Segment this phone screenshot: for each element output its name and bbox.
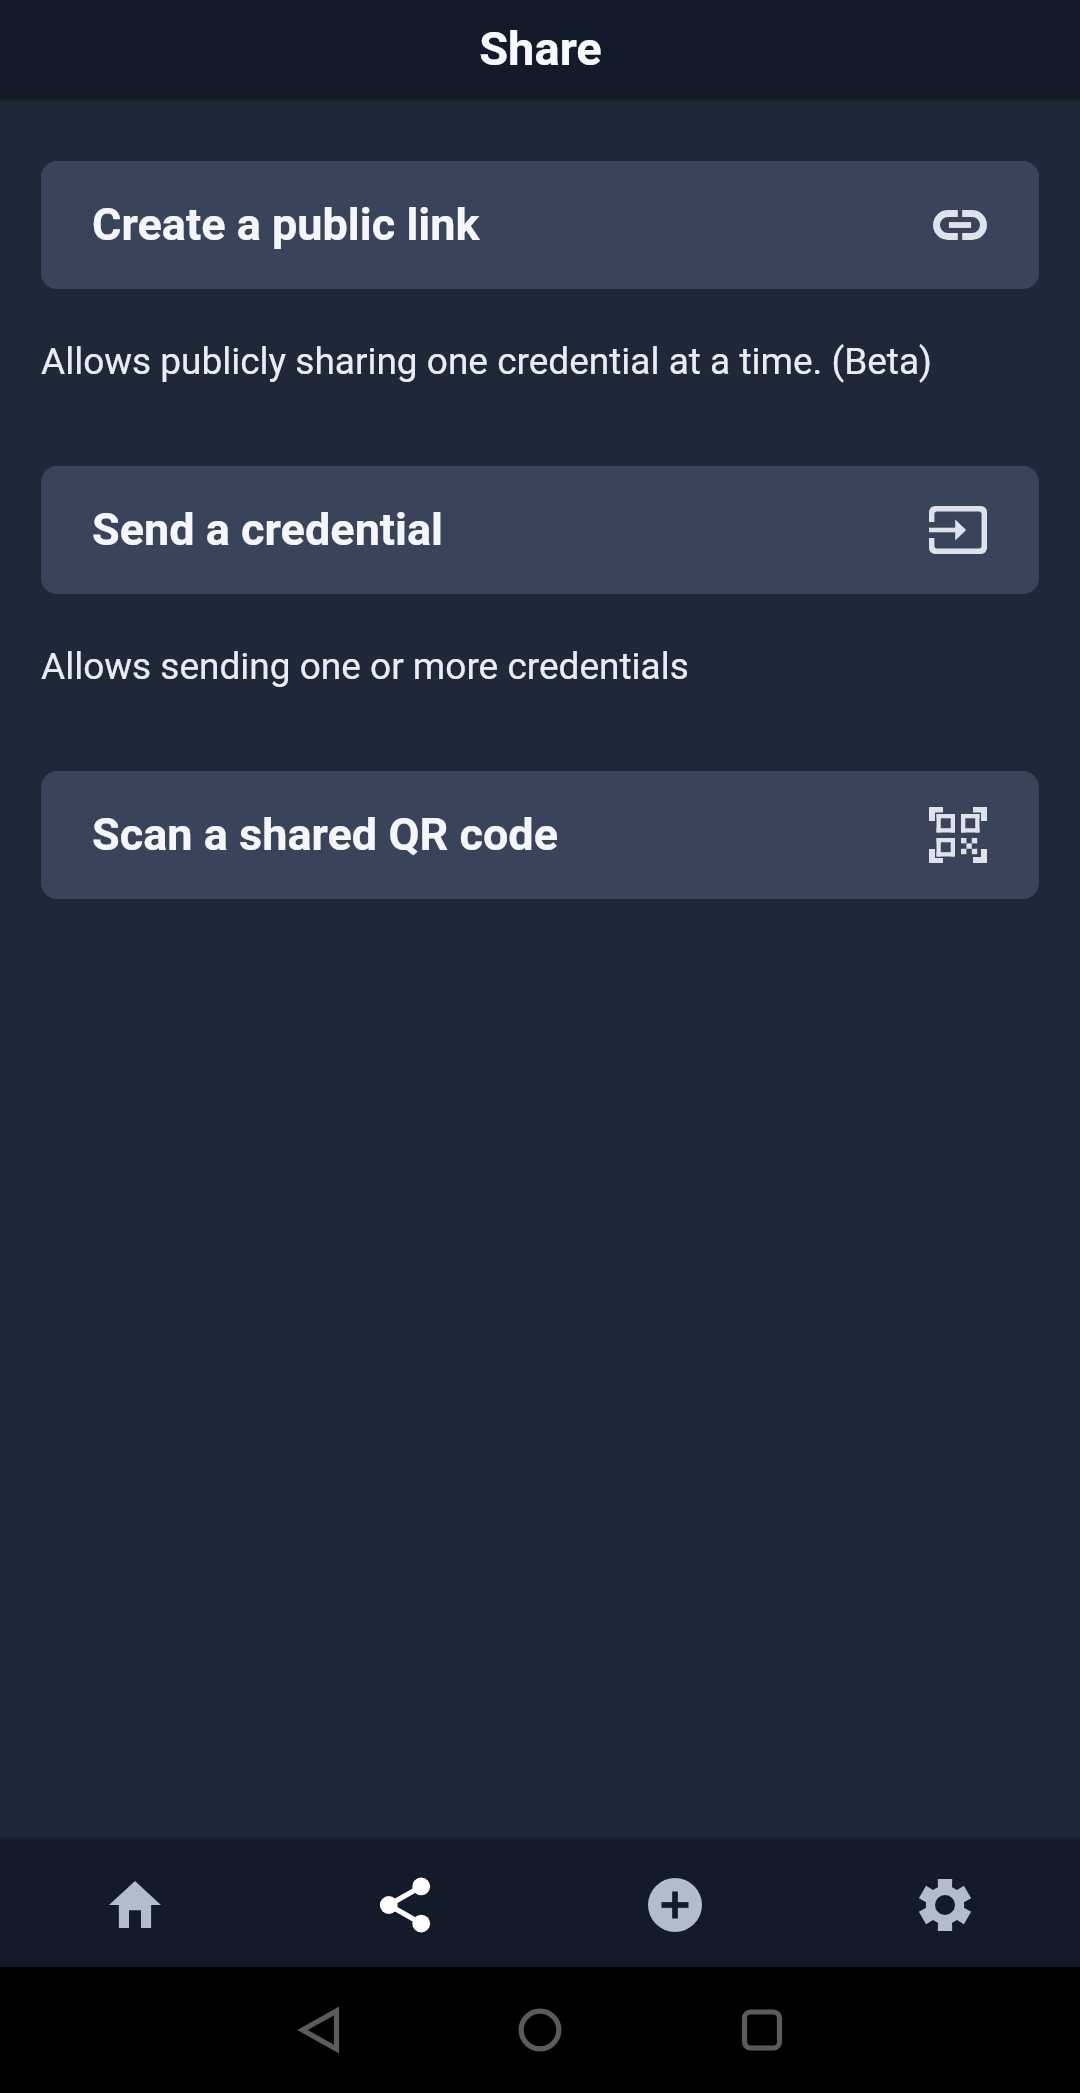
staticText: Allows publicly sharing one credential a… [41,340,1039,383]
staticText: Allows sending one or more credentials [41,645,1039,688]
staticText: Send a credential [92,503,929,556]
button[interactable]: Send a credential [41,466,1039,594]
staticText: Scan a shared QR code [92,808,929,861]
button[interactable]: Add [540,1842,810,1967]
button[interactable]: Scan a shared QR code [41,771,1039,899]
button[interactable]: Back [248,1967,392,2093]
button[interactable]: Home [0,1842,270,1967]
button[interactable]: Settings [810,1842,1080,1967]
button[interactable]: Recent apps [690,1967,834,2093]
staticText: Create a public link [92,198,933,251]
button[interactable]: Create a public link [41,161,1039,289]
button[interactable]: Share [270,1842,540,1967]
button[interactable]: Home [468,1967,612,2093]
staticText: Share [479,21,602,76]
